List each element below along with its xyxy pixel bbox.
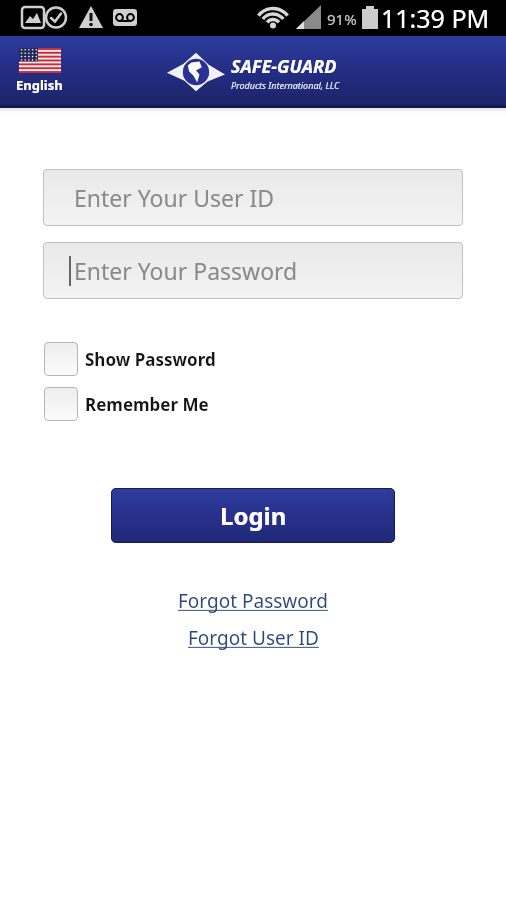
button[interactable]: Enter Your User ID	[43, 169, 463, 226]
button[interactable]: English	[16, 48, 63, 94]
staticText: Login	[220, 499, 287, 532]
staticText: Remember Me	[85, 393, 209, 416]
button[interactable]: Forgot Password	[0, 588, 506, 614]
button[interactable]: Login	[111, 488, 395, 543]
staticText: Forgot User ID	[188, 625, 319, 651]
button[interactable]: Forgot User ID	[0, 625, 506, 651]
staticText: Enter Your User ID	[74, 182, 275, 213]
staticText: Products International, LLC	[231, 79, 340, 91]
staticText: 91%	[327, 9, 357, 29]
button[interactable]: Remember Me	[44, 387, 209, 421]
staticText: Enter Your Password	[74, 255, 298, 286]
staticText: 11:39 PM	[381, 1, 490, 35]
button[interactable]: Enter Your Password	[43, 242, 463, 299]
staticText: Show Password	[85, 348, 216, 371]
staticText: English	[16, 76, 63, 94]
staticText: Forgot Password	[178, 588, 328, 614]
staticText: SAFE-GUARD	[231, 54, 337, 79]
button[interactable]: Show Password	[44, 342, 216, 376]
